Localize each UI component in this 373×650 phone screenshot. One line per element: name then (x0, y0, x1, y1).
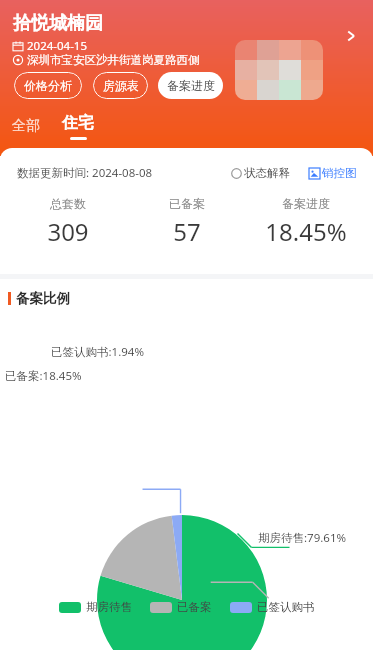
button[interactable]: 已签认购书 (228, 598, 317, 616)
staticText: 总套数 (50, 196, 86, 211)
button[interactable]: 价格分析 (14, 72, 82, 99)
staticText: 销控图 (322, 166, 357, 180)
staticText: 已备案 (169, 196, 205, 211)
button[interactable]: 全部 (8, 114, 44, 138)
staticText: 57 (173, 215, 201, 248)
staticText: 已备案:18.45% (5, 368, 82, 384)
staticText: 2024-04-15 (27, 38, 88, 54)
staticText: 状态解释 (244, 166, 290, 180)
staticText: 数据更新时间: 2024-08-08 (17, 165, 153, 181)
staticText: 期房待售 (86, 600, 132, 614)
staticText: 期房待售:79.61% (258, 530, 347, 546)
button[interactable]: 备案进度 (158, 72, 223, 99)
button[interactable]: 销控图 (307, 164, 359, 182)
button[interactable]: 项目图片 (235, 40, 323, 100)
button[interactable]: 备案进度 (246, 196, 365, 248)
staticText: 309 (47, 215, 89, 248)
button[interactable]: 房源表 (93, 72, 148, 99)
button[interactable]: 住宅 (58, 110, 98, 143)
button[interactable]: 更多 (338, 23, 364, 49)
staticText: 备案比例 (16, 290, 70, 307)
staticText: 已签认购书:1.94% (51, 344, 144, 360)
staticText: 备案进度 (167, 78, 215, 93)
staticText: 深圳市宝安区沙井街道岗夏路西侧 (27, 53, 200, 67)
button[interactable]: 已备案 (127, 196, 246, 248)
staticText: 已签认购书 (257, 600, 315, 614)
staticText: 拾悦城楠园 (13, 12, 103, 35)
button[interactable]: 期房待售 (57, 598, 134, 616)
staticText: 房源表 (103, 78, 139, 93)
staticText: 备案进度 (282, 196, 330, 211)
button[interactable]: 状态解释 (229, 164, 292, 182)
staticText: 18.45% (265, 215, 347, 248)
staticText: 价格分析 (24, 78, 72, 93)
staticText: 全部 (12, 117, 40, 135)
staticText: 已备案 (177, 600, 212, 614)
button[interactable]: 总套数 (8, 196, 127, 248)
staticText: 住宅 (62, 113, 94, 133)
button[interactable]: 已备案 (148, 598, 214, 616)
